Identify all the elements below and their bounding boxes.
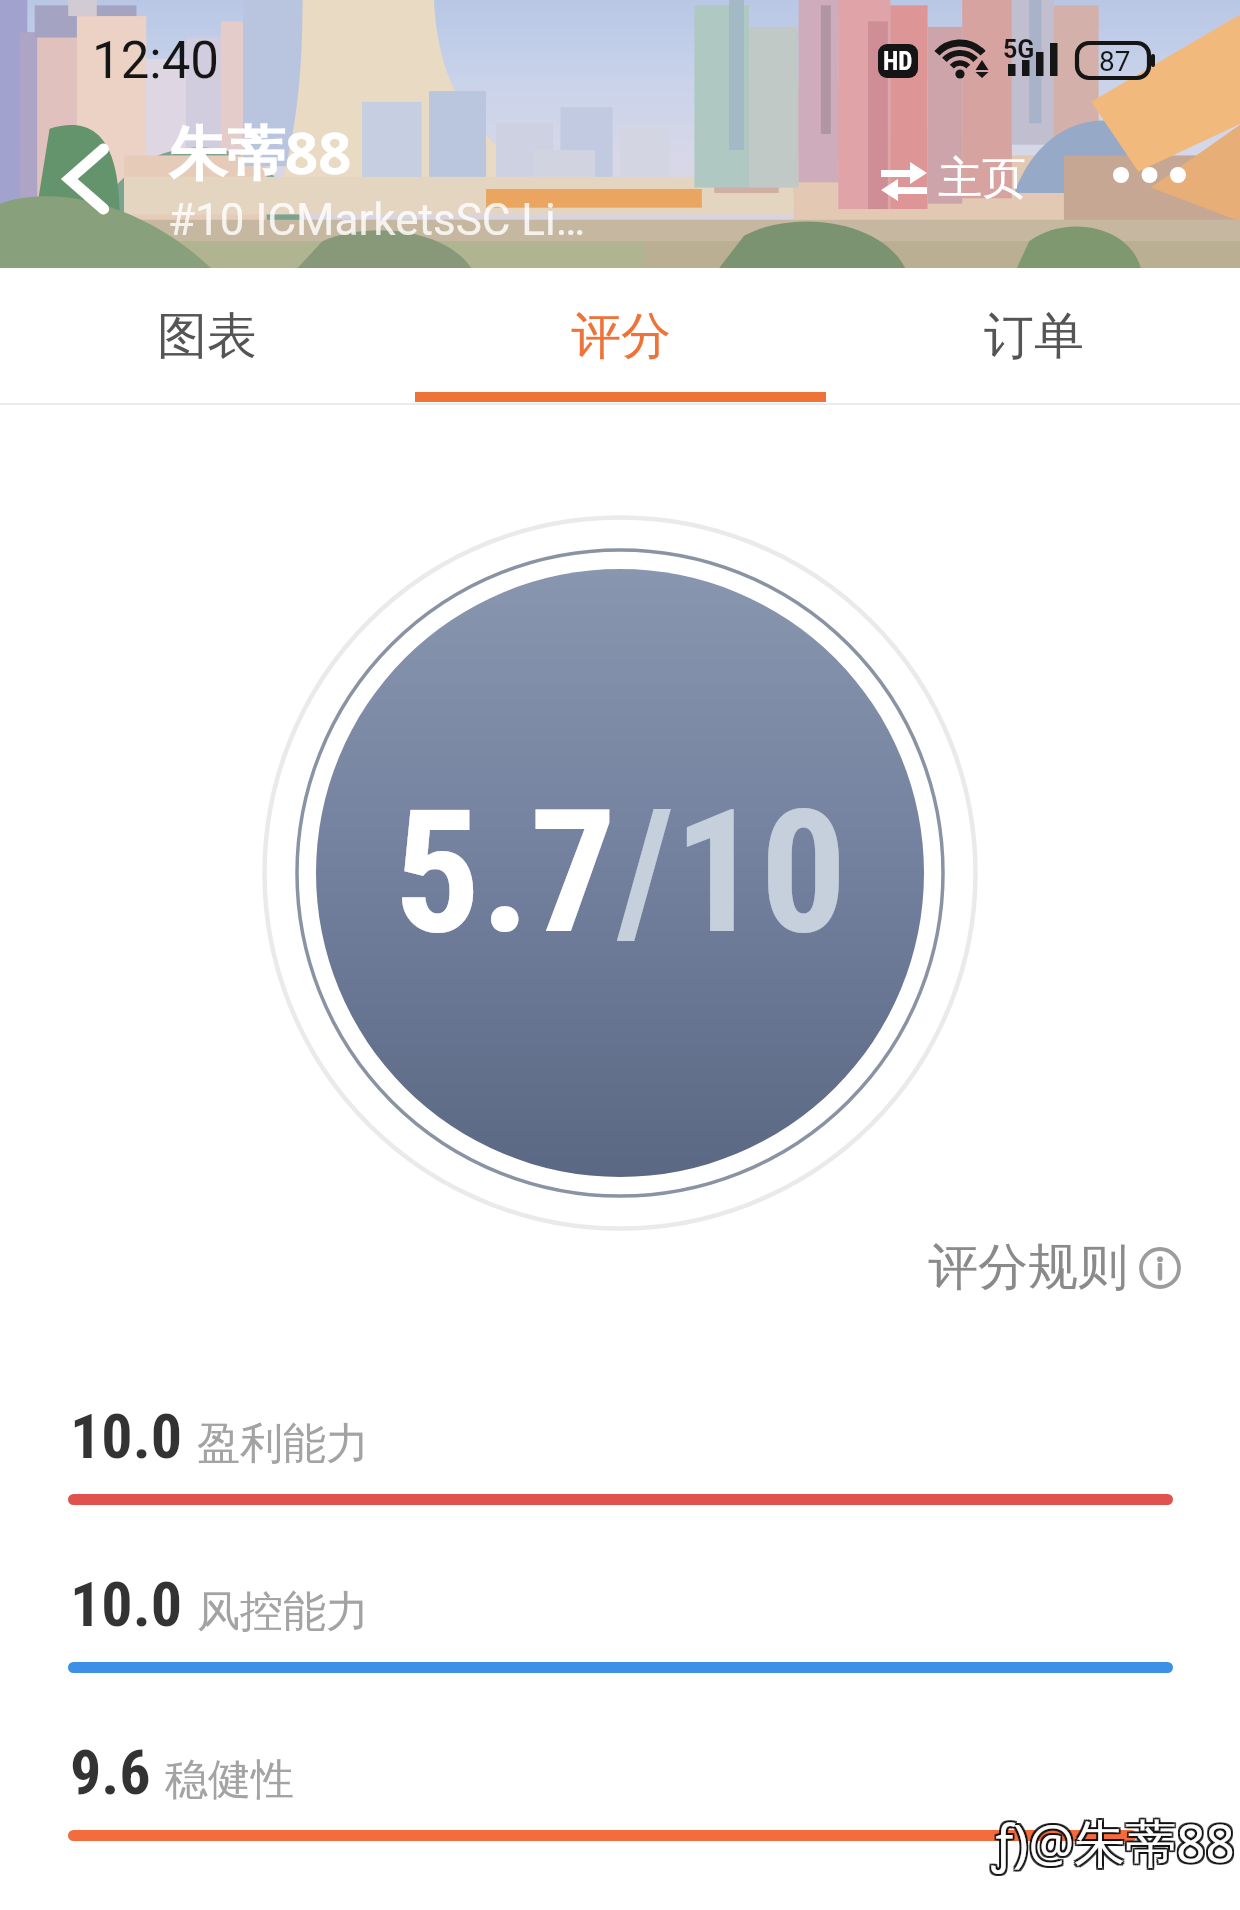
staticText: ƒ)@朱蒂88 <box>994 1805 1237 1875</box>
staticText: 10.0 <box>70 1568 183 1641</box>
button[interactable]: 图表 <box>0 268 414 403</box>
button[interactable]: 评分规则 <box>928 1236 1182 1299</box>
staticText: 5G <box>1003 35 1035 64</box>
button[interactable]: 订单 <box>827 268 1240 403</box>
staticText: 9.6 <box>70 1736 151 1809</box>
staticText: 风控能力 <box>197 1585 369 1639</box>
button[interactable]: More options <box>1098 152 1200 198</box>
staticText: ƒ)@朱蒂88 <box>992 1809 1235 1879</box>
staticText: HD <box>883 47 913 76</box>
staticText: 图表 <box>157 305 257 368</box>
staticText: ƒ)@朱蒂88 <box>990 1809 1233 1879</box>
staticText: ƒ)@朱蒂88 <box>990 1805 1233 1875</box>
staticText: 主页 <box>938 151 1026 206</box>
staticText: 5.7 <box>394 772 617 972</box>
staticText: 评分规则 <box>928 1236 1128 1299</box>
staticText: 盈利能力 <box>197 1417 369 1471</box>
button[interactable]: Back <box>42 122 130 236</box>
staticText: 12:40 <box>92 31 220 91</box>
staticText: 评分 <box>571 305 671 368</box>
staticText: 订单 <box>984 305 1084 368</box>
staticText: ƒ)@朱蒂88 <box>990 1807 1233 1877</box>
staticText: 10.0 <box>70 1400 183 1473</box>
staticText: 稳健性 <box>165 1753 294 1807</box>
button[interactable]: 评分 <box>414 268 827 403</box>
staticText: ƒ)@朱蒂88 <box>994 1807 1237 1877</box>
button[interactable]: 主页 <box>877 152 1026 207</box>
staticText: ƒ)@朱蒂88 <box>992 1805 1235 1875</box>
staticText: #10 ICMarketsSC Li… <box>168 194 586 246</box>
staticText: /10 <box>617 772 847 972</box>
staticText: 87 <box>1099 45 1131 78</box>
staticText: ƒ)@朱蒂88 <box>992 1807 1235 1877</box>
staticText: ƒ)@朱蒂88 <box>994 1809 1237 1879</box>
staticText: 朱蒂88 <box>169 112 352 191</box>
